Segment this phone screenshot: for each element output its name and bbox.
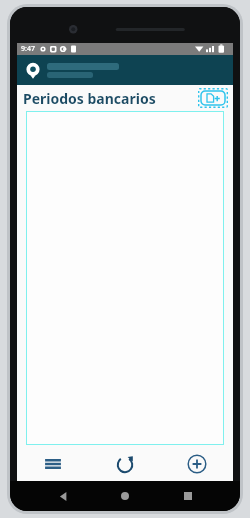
button[interactable]: Back — [53, 486, 73, 506]
button[interactable]: Add new period — [198, 88, 228, 108]
staticText: 9:47 — [21, 44, 35, 54]
other: App logo — [22, 59, 44, 81]
button[interactable]: Refresh — [89, 447, 161, 481]
button[interactable]: Recents — [178, 486, 198, 506]
staticText: Periodos bancarios — [23, 89, 156, 108]
button[interactable]: Menu — [17, 447, 89, 481]
button[interactable]: Home — [115, 486, 135, 506]
button[interactable]: Add — [161, 447, 233, 481]
